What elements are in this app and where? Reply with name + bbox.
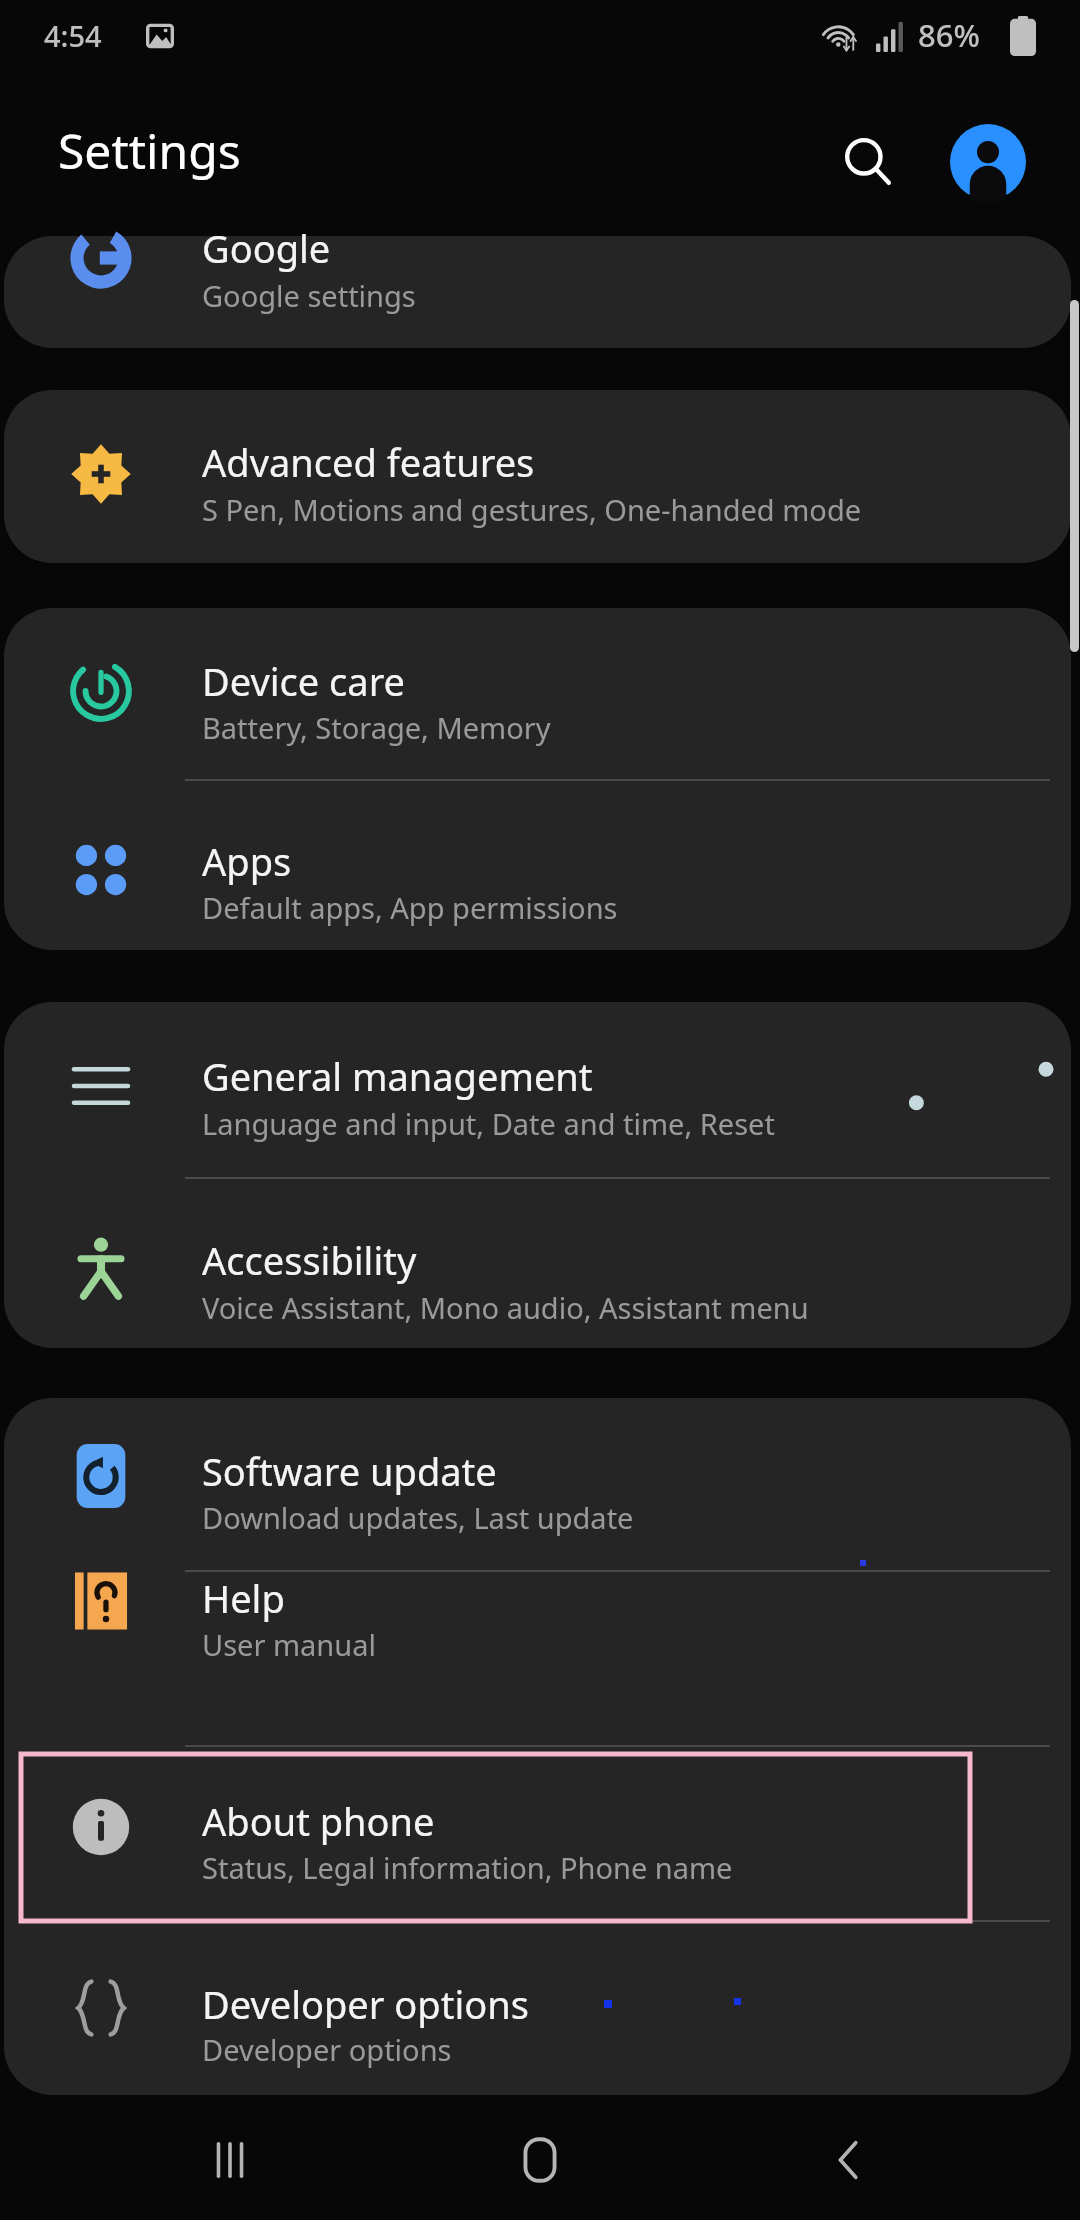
staticText: 4:54 bbox=[44, 16, 102, 55]
button[interactable] bbox=[4, 1930, 1071, 2100]
staticText: Google bbox=[202, 222, 331, 274]
button[interactable] bbox=[4, 236, 1071, 406]
button[interactable] bbox=[4, 608, 1071, 778]
staticText: Developer options bbox=[202, 2030, 452, 2069]
staticText: 86% bbox=[918, 14, 980, 56]
button[interactable] bbox=[4, 1002, 1071, 1172]
staticText: About phone bbox=[202, 1795, 435, 1847]
button[interactable]: Home bbox=[490, 2110, 590, 2210]
staticText: User manual bbox=[202, 1625, 376, 1664]
staticText: Battery, Storage, Memory bbox=[202, 708, 551, 747]
staticText: Software update bbox=[202, 1445, 497, 1497]
staticText: Developer options bbox=[202, 1978, 529, 2030]
button[interactable] bbox=[4, 1188, 1071, 1358]
staticText: Settings bbox=[58, 118, 241, 183]
staticText: Advanced features bbox=[202, 436, 535, 488]
staticText: S Pen, Motions and gestures, One-handed … bbox=[202, 490, 862, 529]
button[interactable] bbox=[4, 1580, 1071, 1750]
button[interactable] bbox=[4, 790, 1071, 960]
staticText: Apps bbox=[202, 835, 292, 887]
button[interactable]: Back bbox=[800, 2110, 900, 2210]
staticText: General management bbox=[202, 1050, 593, 1102]
button[interactable]: Search bbox=[820, 114, 916, 210]
button[interactable]: Recent apps bbox=[180, 2110, 280, 2210]
button[interactable]: Account bbox=[938, 112, 1038, 212]
staticText: Language and input, Date and time, Reset bbox=[202, 1104, 775, 1143]
staticText: Accessibility bbox=[202, 1234, 417, 1286]
staticText: Status, Legal information, Phone name bbox=[202, 1848, 733, 1887]
button[interactable] bbox=[4, 1754, 1071, 1924]
staticText: Device care bbox=[202, 655, 405, 707]
button[interactable] bbox=[4, 390, 1071, 560]
staticText: Google settings bbox=[202, 276, 416, 315]
staticText: Download updates, Last update bbox=[202, 1498, 634, 1537]
staticText: Default apps, App permissions bbox=[202, 888, 618, 927]
button[interactable] bbox=[4, 1398, 1071, 1568]
staticText: Help bbox=[202, 1572, 285, 1624]
staticText: Voice Assistant, Mono audio, Assistant m… bbox=[202, 1288, 809, 1327]
